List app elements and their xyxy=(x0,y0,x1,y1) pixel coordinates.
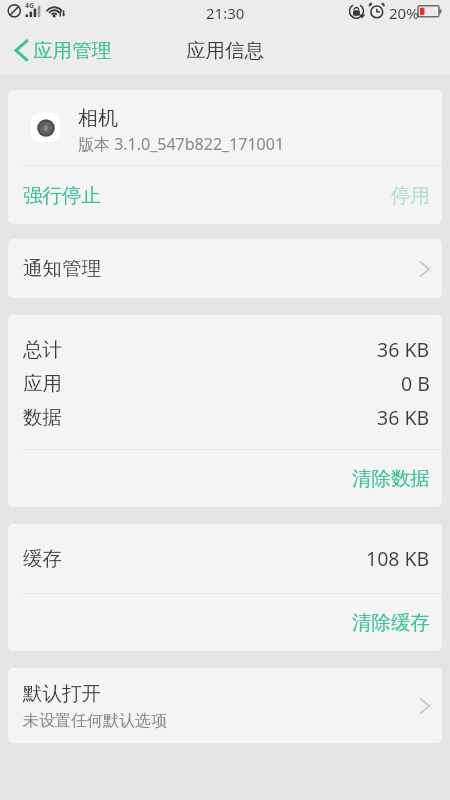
staticText: 应用 xyxy=(23,371,62,396)
staticText: 版本 3.1.0_547b822_171001 xyxy=(78,133,285,155)
staticText: 36 KB xyxy=(377,404,430,431)
staticText: 缓存 xyxy=(23,546,62,571)
staticText: 108 KB xyxy=(366,545,430,572)
staticText: 数据 xyxy=(23,405,62,430)
button[interactable]: 应用管理 xyxy=(0,28,121,75)
staticText: 应用信息 xyxy=(186,38,264,63)
button[interactable]: 清除缓存 xyxy=(8,594,442,651)
button[interactable]: 强行停止 xyxy=(8,166,442,224)
staticText: 36 KB xyxy=(377,336,430,363)
staticText: 清除缓存 xyxy=(352,610,430,635)
button[interactable]: 通知管理 xyxy=(8,239,442,298)
staticText: 总计 xyxy=(23,337,62,362)
staticText: 0 B xyxy=(401,370,430,397)
staticText: 通知管理 xyxy=(23,256,101,281)
staticText: 清除数据 xyxy=(352,466,430,491)
button[interactable]: 默认打开 xyxy=(8,668,442,743)
button[interactable]: 清除数据 xyxy=(8,450,442,507)
staticText: 应用管理 xyxy=(33,38,111,63)
staticText: 20% xyxy=(389,3,419,23)
staticText: 未设置任何默认选项 xyxy=(23,711,167,731)
staticText: 停用 xyxy=(391,183,430,208)
staticText: 默认打开 xyxy=(23,681,101,706)
staticText: 强行停止 xyxy=(23,183,101,208)
staticText: 相机 xyxy=(78,106,118,131)
staticText: 4G xyxy=(25,1,35,11)
staticText: 21:30 xyxy=(206,3,245,23)
